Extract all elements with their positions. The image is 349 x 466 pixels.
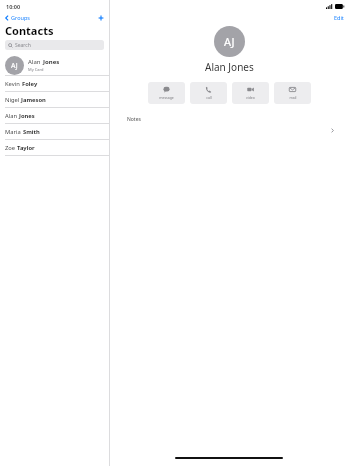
- staticText: Taylor: [17, 144, 35, 152]
- staticText: Notes: [127, 116, 141, 123]
- button[interactable]: Nigel: [0, 92, 109, 107]
- button[interactable]: video: [232, 82, 269, 104]
- button[interactable]: Search: [5, 40, 104, 50]
- staticText: Jones: [19, 112, 35, 120]
- staticText: AJ: [11, 61, 18, 71]
- staticText: video: [246, 95, 255, 100]
- staticText: mail: [289, 95, 297, 100]
- button[interactable]: Edit: [329, 13, 349, 22]
- staticText: Jameson: [21, 96, 46, 104]
- staticText: call: [206, 95, 212, 100]
- button[interactable]: message: [148, 82, 185, 104]
- button[interactable]: mail: [274, 82, 311, 104]
- staticText: Zoe: [5, 144, 17, 152]
- button[interactable]: Alan: [0, 108, 109, 123]
- button[interactable]: Add contact: [96, 13, 106, 23]
- button[interactable]: Kevin: [0, 76, 109, 91]
- staticText: Contacts: [5, 23, 54, 38]
- staticText: Alan: [5, 112, 19, 120]
- button[interactable]: Notes: [110, 113, 349, 135]
- staticText: Alan: [28, 58, 43, 66]
- other: Open notes: [331, 128, 334, 133]
- button[interactable]: AJ: [0, 55, 109, 75]
- button[interactable]: Groups: [0, 13, 33, 22]
- staticText: Nigel: [5, 96, 21, 104]
- button[interactable]: call: [190, 82, 227, 104]
- staticText: Alan Jones: [205, 60, 254, 74]
- staticText: Edit: [334, 14, 344, 21]
- staticText: Smith: [23, 128, 40, 136]
- staticText: message: [159, 95, 174, 100]
- staticText: My Card: [28, 67, 44, 72]
- staticText: Maria: [5, 128, 23, 136]
- staticText: Jones: [43, 58, 60, 66]
- staticText: Search: [15, 42, 31, 49]
- staticText: Foley: [22, 80, 38, 88]
- staticText: Kevin: [5, 80, 22, 88]
- button[interactable]: Zoe: [0, 140, 109, 155]
- staticText: Groups: [11, 14, 30, 21]
- staticText: 10:00: [6, 3, 21, 10]
- staticText: AJ: [224, 34, 235, 49]
- button[interactable]: Maria: [0, 124, 109, 139]
